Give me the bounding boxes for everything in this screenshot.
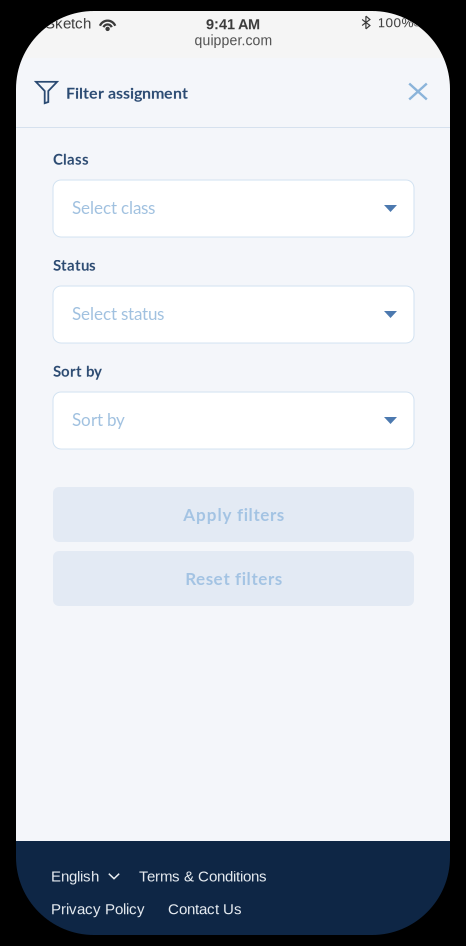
button[interactable]: Close	[400, 75, 436, 110]
staticText: Privacy Policy	[51, 901, 145, 918]
button[interactable]: Select status	[53, 286, 414, 343]
button[interactable]: Sort by	[53, 392, 414, 449]
button[interactable]: Contact Us	[145, 901, 242, 918]
button[interactable]: Apply filters	[53, 487, 414, 542]
staticText: Sketch	[45, 15, 91, 32]
button[interactable]: Reset filters	[53, 551, 414, 606]
staticText: Sort by	[53, 362, 102, 380]
staticText: English	[51, 868, 99, 885]
staticText: Apply filters	[183, 504, 284, 525]
staticText: Reset filters	[185, 568, 282, 589]
button[interactable]: Terms & Conditions	[120, 868, 267, 885]
staticText: 9:41 AM	[206, 16, 260, 32]
staticText: Contact Us	[168, 901, 242, 918]
staticText: Class	[53, 150, 89, 168]
button[interactable]: Select class	[53, 180, 414, 237]
button[interactable]: Privacy Policy	[51, 901, 145, 918]
staticText: quipper.com	[194, 32, 272, 48]
staticText: 100%	[377, 15, 413, 30]
staticText: Terms & Conditions	[139, 868, 267, 885]
staticText: Sort by	[72, 409, 125, 430]
staticText: Filter assignment	[66, 83, 188, 102]
button[interactable]: English	[51, 868, 120, 885]
staticText: Select class	[72, 197, 155, 218]
staticText: Select status	[72, 303, 164, 324]
staticText: Status	[53, 256, 96, 274]
